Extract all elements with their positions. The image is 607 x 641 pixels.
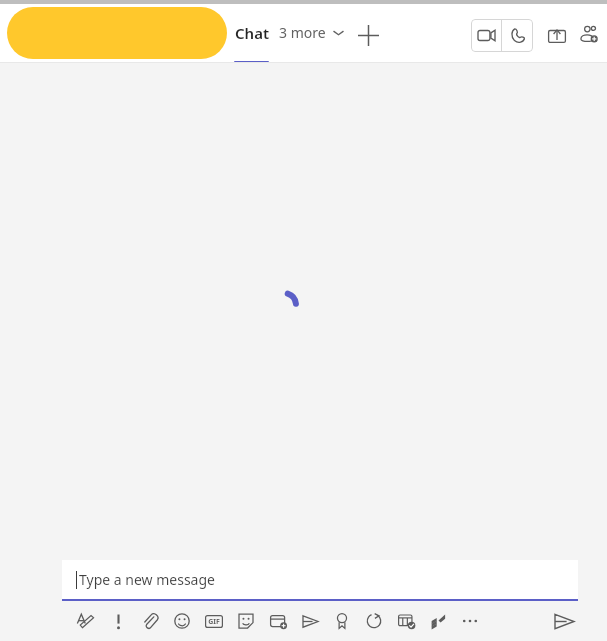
button[interactable]: Attach file (134, 605, 166, 637)
button[interactable]: Meet now (262, 605, 294, 637)
button[interactable]: Send (548, 605, 580, 637)
button[interactable]: Sticker (230, 605, 262, 637)
button[interactable]: Stream (294, 605, 326, 637)
button[interactable]: Important (102, 605, 134, 637)
button[interactable]: 3 more (279, 18, 344, 46)
button[interactable]: Chat (229, 16, 275, 62)
button[interactable]: Add people (574, 20, 602, 48)
staticText: Chat (235, 23, 270, 43)
button[interactable]: More options (454, 605, 486, 637)
button[interactable]: Emoji (166, 605, 198, 637)
button[interactable]: GIF (198, 605, 230, 637)
button[interactable]: Praise (326, 605, 358, 637)
staticText: GIF (208, 617, 220, 627)
button[interactable]: Type a new message (62, 560, 578, 599)
button[interactable]: Loop components (358, 605, 390, 637)
button[interactable]: Add tab (354, 21, 382, 49)
button[interactable]: Chat header (7, 7, 227, 59)
button[interactable]: Video call (471, 19, 501, 52)
button[interactable]: Share (543, 21, 571, 49)
staticText: 3 more (279, 23, 326, 42)
button[interactable]: Approvals (390, 605, 422, 637)
staticText: Type a new message (79, 570, 215, 589)
button[interactable]: Audio call (502, 19, 533, 52)
button[interactable]: Format (70, 605, 102, 637)
button[interactable]: Apps (422, 605, 454, 637)
